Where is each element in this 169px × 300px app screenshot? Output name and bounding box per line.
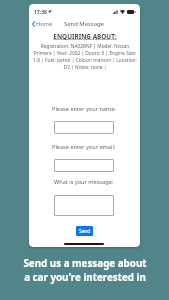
button[interactable] <box>54 159 114 172</box>
staticText: ENQUIRING ABOUT: <box>53 32 117 41</box>
staticText: What is your message: <box>54 178 114 186</box>
staticText: Registration: NA02RNF | Model: Nissan Pr… <box>33 43 137 71</box>
other: Cellular signal <box>113 10 118 14</box>
staticText: Please enter your name: <box>52 105 116 113</box>
other: Battery <box>127 10 135 14</box>
staticText: Please enter your email: <box>52 143 116 151</box>
staticText: Send Message <box>64 20 104 28</box>
button[interactable] <box>54 121 114 134</box>
staticText: Home <box>36 20 53 28</box>
staticText: Send us a message about <box>23 257 147 270</box>
other: Wi-Fi <box>120 10 125 14</box>
staticText: a car you're interested in <box>24 271 146 284</box>
other: Location active <box>48 10 52 14</box>
staticText: Send <box>79 228 91 235</box>
button[interactable]: Send <box>76 226 93 236</box>
button[interactable]: Home <box>32 20 53 28</box>
button[interactable] <box>54 195 114 216</box>
staticText: 17:38 <box>34 9 47 16</box>
